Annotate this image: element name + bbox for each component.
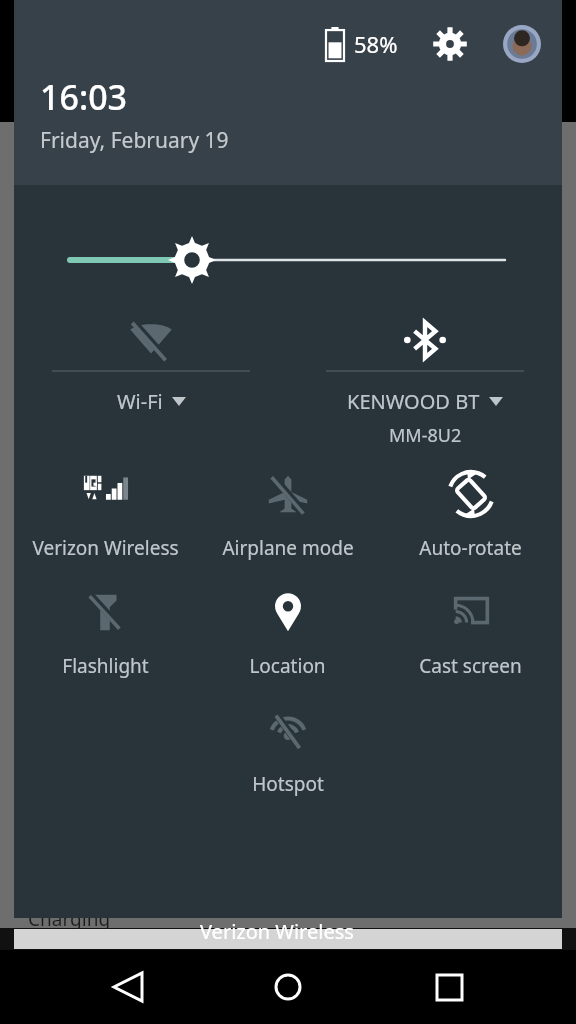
staticText: Hotspot <box>252 771 324 797</box>
staticText: KENWOOD BT <box>347 388 480 415</box>
staticText: 58% <box>354 29 398 59</box>
staticText: Charging <box>28 906 111 932</box>
button[interactable]: Location <box>196 583 379 679</box>
button[interactable]: User profile <box>500 22 544 66</box>
staticText: Wi-Fi <box>117 388 163 415</box>
staticText: Auto-rotate <box>419 535 522 561</box>
button[interactable]: Cast screen <box>379 583 562 679</box>
button[interactable]: Auto-rotate <box>379 465 562 561</box>
button[interactable]: Airplane mode <box>196 465 379 561</box>
button[interactable]: Brightness <box>14 237 562 283</box>
button[interactable]: Flashlight <box>14 583 196 679</box>
button[interactable]: Wi-Fi <box>14 309 288 449</box>
button[interactable]: Settings <box>428 22 472 66</box>
staticText: Cast screen <box>419 653 522 679</box>
button[interactable]: Verizon Wireless <box>14 465 196 561</box>
button[interactable]: KENWOOD BT <box>288 309 562 449</box>
staticText: 16:03 <box>40 74 128 120</box>
staticText: Location <box>249 653 326 679</box>
staticText: Verizon Wireless <box>32 535 179 561</box>
staticText: Airplane mode <box>222 535 354 561</box>
button[interactable]: Recent apps <box>416 954 482 1020</box>
button[interactable]: Hotspot <box>196 701 379 797</box>
button[interactable]: Home <box>255 954 321 1020</box>
button[interactable]: Back <box>95 954 161 1020</box>
staticText: Friday, February 19 <box>40 126 229 155</box>
staticText: Verizon Wireless <box>200 918 354 945</box>
staticText: Flashlight <box>62 653 149 679</box>
staticText: MM-8U2 <box>389 423 462 448</box>
